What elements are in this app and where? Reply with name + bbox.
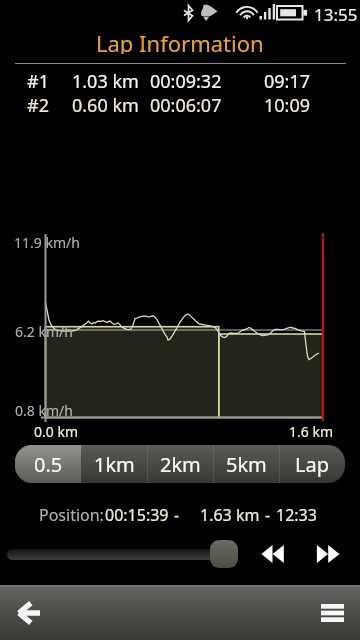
staticText: 5km	[226, 451, 267, 478]
staticText: 00:15:39	[105, 504, 169, 526]
staticText: 09:17	[264, 69, 311, 93]
staticText: 00:09:32	[150, 69, 222, 93]
button[interactable]: 0.5	[15, 445, 81, 483]
staticText: 6.2 km/h	[15, 322, 73, 341]
staticText: #1	[27, 69, 49, 93]
staticText: 13:55	[314, 3, 358, 26]
button[interactable]: #1	[0, 69, 360, 93]
button[interactable]: Back	[6, 585, 50, 640]
button[interactable]: Lap	[279, 445, 345, 483]
button[interactable]: Rewind	[255, 538, 291, 570]
staticText: #2	[27, 93, 49, 117]
staticText: Lap	[295, 451, 329, 478]
staticText: 0.8 km/h	[15, 401, 73, 420]
button[interactable]: 1km	[81, 445, 147, 483]
staticText: 0.5	[34, 451, 63, 478]
button[interactable]: 2km	[147, 445, 213, 483]
staticText: Lap Information	[96, 28, 264, 54]
staticText: 00:06:07	[150, 93, 222, 117]
button[interactable]: #2	[0, 93, 360, 117]
staticText: 1.63 km	[200, 504, 260, 526]
staticText: 0.60 km	[72, 93, 139, 117]
staticText: 2km	[160, 451, 201, 478]
staticText: -	[174, 504, 180, 526]
button[interactable]: Fast forward	[310, 538, 346, 570]
button[interactable]: Seek thumb	[210, 540, 238, 568]
button[interactable]: Menu	[310, 585, 354, 640]
staticText: 11.9 km/h	[14, 233, 80, 252]
staticText: Position:	[39, 504, 104, 526]
staticText: 0.0 km	[34, 422, 78, 441]
button[interactable]: Seek	[7, 549, 225, 560]
staticText: 1km	[94, 451, 135, 478]
staticText: 1.6 km	[289, 422, 333, 441]
staticText: 1.03 km	[72, 69, 139, 93]
staticText: 12:33	[276, 504, 317, 526]
button[interactable]: 5km	[213, 445, 279, 483]
staticText: 10:09	[264, 93, 311, 117]
staticText: -	[265, 504, 271, 526]
